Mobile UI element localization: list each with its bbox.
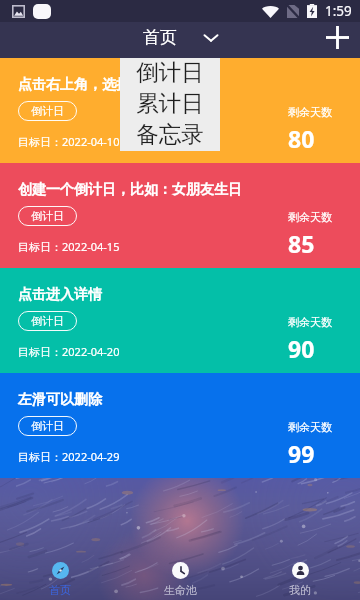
staticText: 备忘录	[136, 120, 204, 148]
staticText: 倒计日	[31, 314, 64, 328]
staticText: 剩余天数	[288, 315, 332, 329]
button[interactable]: 累计日	[120, 89, 220, 120]
staticText: 首页	[49, 583, 71, 597]
staticText: 倒计日	[31, 104, 64, 118]
staticText: 目标日：2022-04-29	[18, 449, 120, 464]
staticText: 倒计日	[31, 209, 64, 223]
staticText: 80	[288, 123, 315, 154]
staticText: 90	[288, 333, 315, 364]
staticText: 我的	[289, 583, 311, 597]
staticText: 生命池	[164, 583, 197, 597]
button[interactable]: 备忘录	[120, 120, 220, 151]
button[interactable]: Add	[315, 22, 360, 58]
staticText: 累计日	[136, 89, 204, 117]
staticText: 创建一个倒计日，比如：女朋友生日	[18, 181, 242, 199]
button[interactable]: 生命池	[120, 560, 240, 598]
staticText: 目标日：2022-04-15	[18, 239, 120, 254]
button[interactable]: 点击进入详情	[0, 268, 360, 373]
staticText: 99	[288, 438, 315, 469]
staticText: 左滑可以删除	[18, 391, 102, 409]
staticText: 剩余天数	[288, 420, 332, 434]
button[interactable]: 创建一个倒计日，比如：女朋友生日	[0, 163, 360, 268]
button[interactable]: 首页	[0, 560, 120, 598]
staticText: 倒计日	[31, 419, 64, 433]
button[interactable]: 首页	[135, 24, 226, 51]
button[interactable]: 我的	[240, 560, 360, 598]
staticText: 剩余天数	[288, 210, 332, 224]
staticText: 85	[288, 228, 315, 259]
staticText: 目标日：2022-04-10	[18, 134, 120, 149]
staticText: 目标日：2022-04-20	[18, 344, 120, 359]
staticText: 点击右上角，选择类型	[18, 76, 158, 94]
staticText: 倒计日	[136, 58, 204, 86]
staticText: 剩余天数	[288, 105, 332, 119]
staticText: 点击进入详情	[18, 286, 102, 304]
button[interactable]: 倒计日	[120, 58, 220, 89]
staticText: 首页	[143, 27, 177, 48]
button[interactable]: 点击右上角，选择类型	[0, 58, 360, 163]
staticText: 1:59	[325, 2, 352, 20]
button[interactable]: 左滑可以删除	[0, 373, 360, 478]
